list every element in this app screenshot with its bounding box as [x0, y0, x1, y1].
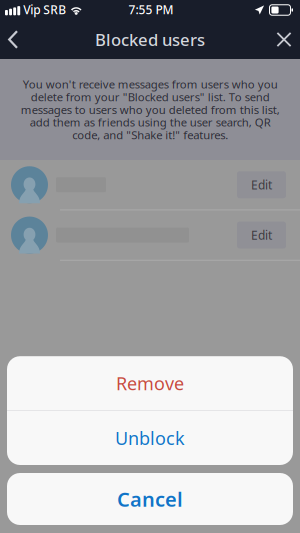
staticText: You won't receive messages from users wh… [20, 78, 279, 141]
button[interactable]: Close [270, 20, 298, 59]
button[interactable]: Edit [0, 160, 300, 209]
button[interactable]: Cancel [7, 473, 293, 525]
button[interactable]: Remove [7, 356, 293, 410]
staticText: 7:55 PM [128, 1, 173, 18]
staticText: Blocked users [95, 28, 205, 51]
staticText: Edit [251, 227, 272, 243]
button[interactable]: Back [0, 20, 26, 59]
button[interactable]: Edit [0, 210, 300, 260]
staticText: Cancel [117, 485, 183, 513]
staticText: Unblock [115, 426, 185, 450]
button[interactable]: Unblock [7, 411, 293, 465]
staticText: Remove [116, 371, 184, 395]
staticText: Vip SRB [23, 1, 66, 18]
staticText: Edit [251, 177, 272, 193]
